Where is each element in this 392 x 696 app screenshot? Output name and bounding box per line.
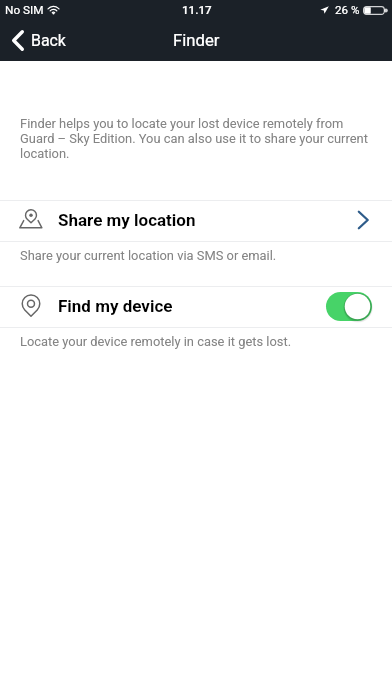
button[interactable]: Find my device xyxy=(0,286,392,326)
staticText: No SIM xyxy=(5,3,44,17)
staticText: 26 % xyxy=(335,3,360,17)
staticText: Share my location xyxy=(58,210,196,230)
button[interactable]: Find my device toggle xyxy=(326,292,372,321)
button[interactable]: Back xyxy=(0,27,76,53)
other: Open share my location xyxy=(352,208,376,232)
staticText: Share your current location via SMS or e… xyxy=(20,248,277,263)
staticText: Finder xyxy=(173,31,220,51)
staticText: Back xyxy=(31,31,66,50)
staticText: Finder helps you to locate your lost dev… xyxy=(20,116,372,161)
staticText: 11.17 xyxy=(182,3,212,17)
staticText: Find my device xyxy=(58,296,173,316)
staticText: Locate your device remotely in case it g… xyxy=(20,334,292,349)
button[interactable]: Share my location xyxy=(0,200,392,240)
